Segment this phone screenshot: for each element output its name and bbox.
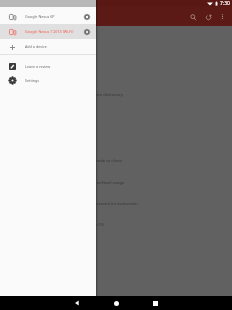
button[interactable]: Settings (0, 73, 96, 87)
staticText: Settings (25, 12, 52, 22)
button[interactable]: Upgrade to client (0, 158, 232, 164)
button[interactable]: Device settings (81, 26, 92, 37)
button[interactable]: Home (106, 296, 126, 310)
button[interactable]: Refresh (201, 10, 215, 24)
button[interactable]: Search (186, 10, 200, 24)
button[interactable]: Recent apps (145, 296, 165, 310)
staticText: Manage the active dictionary (66, 92, 123, 98)
staticText: Mobile (interface) usage (77, 180, 125, 186)
button[interactable]: Widgets accessed on lockscreen (0, 201, 232, 207)
staticText: Settings (25, 78, 40, 83)
button[interactable]: Mobile (interface) usage (0, 180, 232, 186)
button[interactable]: Add a device (0, 39, 96, 54)
button[interactable]: More options (216, 10, 229, 23)
button[interactable]: Leave a review (0, 59, 96, 73)
button[interactable]: Device settings (81, 11, 92, 22)
button[interactable]: About Wear OS (0, 222, 232, 228)
button[interactable]: Open navigation drawer (6, 10, 19, 23)
button[interactable]: Back (67, 296, 87, 310)
staticText: Widgets accessed on lockscreen (75, 201, 138, 207)
button[interactable]: Google Nexus 7 2013 (Wi-Fi) (0, 24, 96, 39)
staticText: 7:30 (220, 0, 230, 7)
staticText: Google Nexus 7 2013 (Wi-Fi) (25, 29, 74, 34)
staticText: Upgrade to client (88, 158, 122, 164)
staticText: Leave a review (25, 64, 51, 69)
staticText: Google Nexus 6P (25, 14, 55, 19)
button[interactable]: Manage the active dictionary (0, 92, 232, 98)
staticText: About Wear OS (74, 222, 104, 228)
staticText: Add a device (25, 44, 47, 49)
button[interactable]: Google Nexus 6P (0, 9, 96, 24)
